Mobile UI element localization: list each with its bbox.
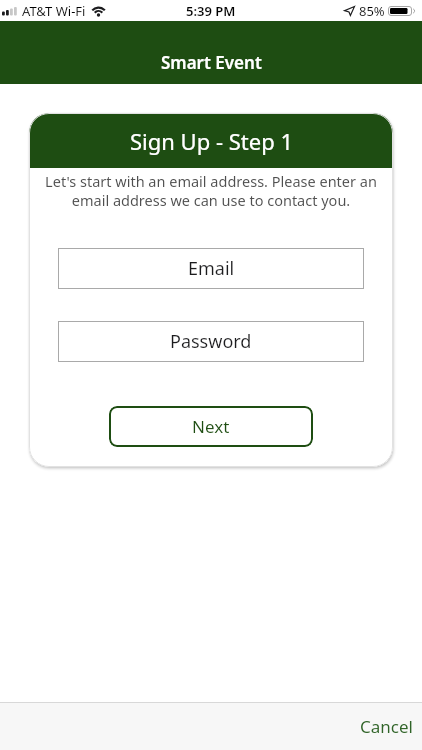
staticText: 85% <box>359 2 385 20</box>
staticText: Sign Up - Step 1 <box>130 126 293 156</box>
staticText: AT&T Wi-Fi <box>22 2 86 20</box>
button[interactable]: Password <box>58 321 364 362</box>
button[interactable]: Cancel <box>351 707 422 746</box>
staticText: 5:39 PM <box>186 2 236 20</box>
button[interactable]: Email <box>58 248 364 289</box>
staticText: Next <box>192 415 230 438</box>
staticText: Cancel <box>360 715 413 738</box>
staticText: Let's start with an email address. Pleas… <box>45 171 377 210</box>
staticText: Smart Event <box>161 51 262 74</box>
staticText: Email <box>188 256 235 281</box>
button[interactable]: Next <box>109 406 313 447</box>
staticText: Password <box>170 329 252 354</box>
